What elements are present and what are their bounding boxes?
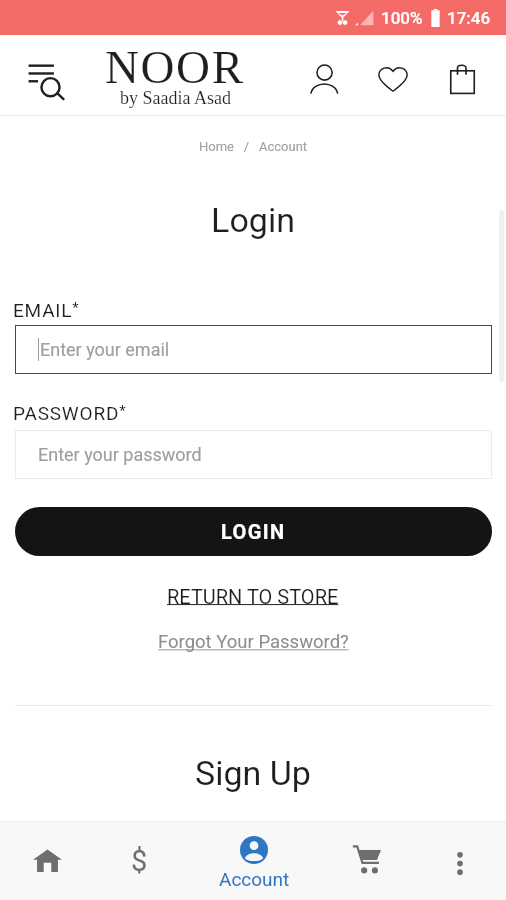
button[interactable]: Cart xyxy=(439,56,485,102)
staticText: 100% xyxy=(381,8,423,28)
button[interactable]: Enter your password xyxy=(15,430,492,479)
button[interactable]: Forgot Your Password? xyxy=(158,631,349,653)
button[interactable]: Home xyxy=(199,139,234,154)
staticText: / xyxy=(234,139,259,154)
staticText: Enter your password xyxy=(38,444,202,465)
staticText: NOOR xyxy=(105,41,245,93)
button[interactable]: Wishlist xyxy=(370,56,416,102)
staticText: Account xyxy=(259,139,308,154)
button[interactable]: Enter your email xyxy=(15,325,492,374)
staticText: Sign Up xyxy=(0,753,506,793)
staticText: $ xyxy=(131,844,148,878)
staticText: EMAIL* xyxy=(13,299,80,321)
staticText: LOGIN xyxy=(221,520,286,543)
button[interactable]: Menu and search xyxy=(22,57,70,105)
button[interactable]: Cart xyxy=(331,824,401,894)
button[interactable]: Offers xyxy=(104,826,174,896)
button[interactable]: Account xyxy=(301,56,347,102)
button[interactable]: LOGIN xyxy=(15,507,492,556)
staticText: PASSWORD* xyxy=(13,402,127,424)
staticText: Login xyxy=(0,200,506,240)
staticText: Enter your email xyxy=(40,339,170,360)
staticText: by Saadia Asad xyxy=(120,88,231,108)
staticText: 17:46 xyxy=(447,8,491,28)
button[interactable]: Account xyxy=(204,827,304,900)
button[interactable]: Home xyxy=(12,825,82,895)
button[interactable]: RETURN TO STORE xyxy=(167,585,339,608)
staticText: Account xyxy=(219,868,290,890)
button[interactable]: More options xyxy=(425,828,495,898)
